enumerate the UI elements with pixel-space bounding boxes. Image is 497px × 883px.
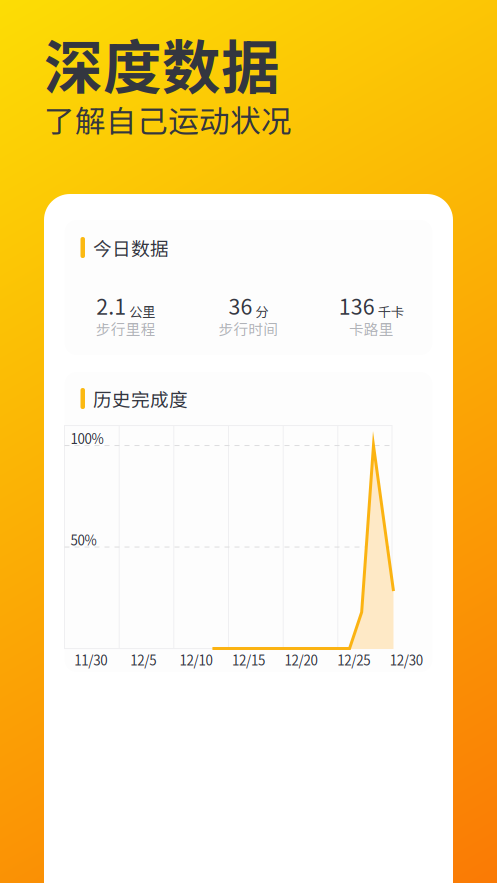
staticText: 12/20 — [285, 650, 318, 669]
staticText: 11/30 — [74, 650, 107, 669]
staticText: 12/30 — [390, 650, 423, 669]
staticText: 步行时间 — [218, 318, 278, 339]
staticText: 深度数据 — [44, 21, 280, 106]
staticText: 历史完成度 — [93, 385, 188, 412]
staticText: 136 — [339, 290, 375, 321]
staticText: 12/15 — [232, 650, 265, 669]
staticText: 100% — [70, 428, 103, 448]
staticText: 今日数据 — [93, 234, 169, 261]
staticText: 卡路里 — [349, 318, 394, 339]
staticText: 12/5 — [130, 650, 156, 669]
staticText: 2.1 — [96, 290, 126, 321]
staticText: 千卡 — [378, 302, 404, 321]
staticText: 了解自己运动状况 — [44, 97, 292, 141]
staticText: 36 — [228, 290, 252, 321]
staticText: 公里 — [129, 302, 155, 321]
staticText: 50% — [70, 530, 96, 549]
staticText: 12/25 — [337, 650, 370, 669]
staticText: 分 — [255, 302, 268, 321]
staticText: 12/10 — [179, 650, 212, 669]
staticText: 步行里程 — [96, 318, 156, 339]
